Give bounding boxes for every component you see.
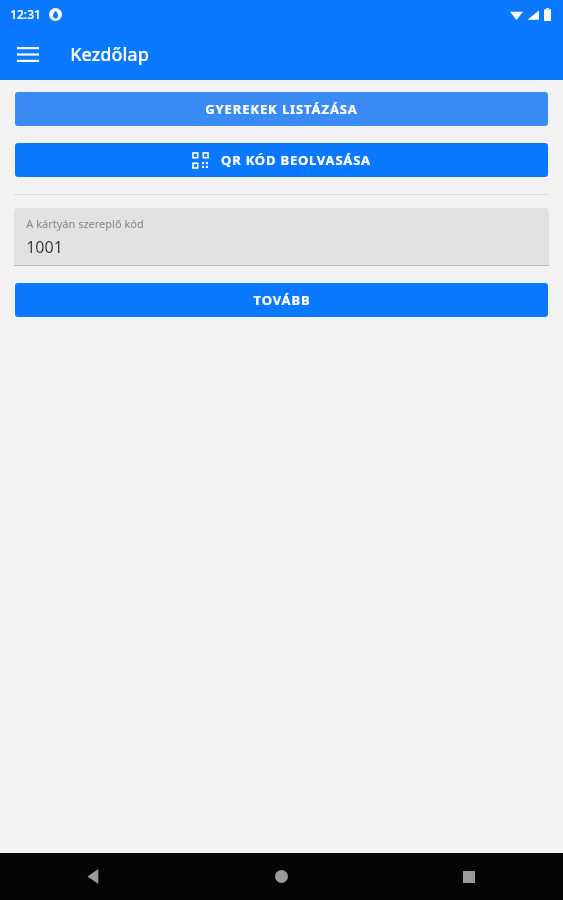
button[interactable]: GYEREKEK LISTÁZÁSA	[15, 92, 548, 126]
button[interactable]: QR KÓD BEOLVASÁSA	[15, 143, 548, 177]
button[interactable]: Back	[0, 853, 187, 900]
staticText: GYEREKEK LISTÁZÁSA	[205, 100, 358, 118]
button[interactable]: A kártyán szereplő kód	[14, 208, 549, 265]
button[interactable]: Open navigation menu	[6, 32, 50, 76]
button[interactable]: TOVÁBB	[15, 283, 548, 317]
button[interactable]: Home	[187, 853, 375, 900]
staticText: TOVÁBB	[253, 291, 311, 309]
staticText: 12:31	[10, 6, 41, 22]
staticText: A kártyán szereplő kód	[26, 216, 144, 231]
staticText: Kezdőlap	[70, 42, 149, 67]
button[interactable]: Recent apps	[375, 853, 563, 900]
staticText: 1001	[26, 236, 63, 258]
staticText: QR KÓD BEOLVASÁSA	[221, 151, 371, 169]
